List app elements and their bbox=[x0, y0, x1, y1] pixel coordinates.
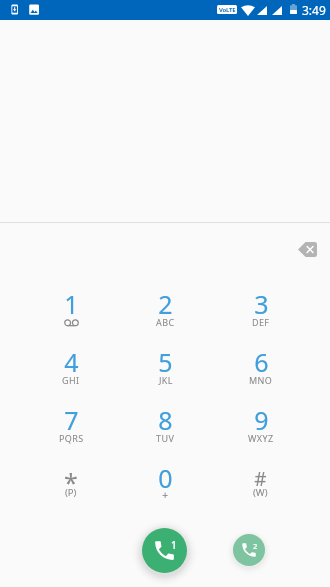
staticText: WXYZ bbox=[248, 432, 274, 444]
button[interactable]: 0 bbox=[118, 461, 213, 519]
staticText: JKL bbox=[159, 374, 173, 386]
staticText: 7 bbox=[64, 403, 79, 437]
staticText: * bbox=[64, 465, 78, 499]
button[interactable]: 8 bbox=[118, 403, 213, 461]
staticText: 8 bbox=[158, 403, 173, 437]
staticText: VoLTE bbox=[219, 6, 236, 14]
button[interactable]: 5 bbox=[118, 345, 213, 403]
button[interactable]: 9 bbox=[213, 403, 308, 461]
staticText: ABC bbox=[156, 316, 175, 328]
button[interactable]: 4 bbox=[24, 345, 118, 403]
staticText: (P) bbox=[65, 486, 77, 499]
staticText: # bbox=[254, 466, 267, 492]
staticText: PQRS bbox=[59, 432, 84, 444]
staticText: MNO bbox=[249, 374, 273, 386]
button[interactable]: 1 bbox=[24, 287, 118, 345]
staticText: 0 bbox=[158, 461, 173, 495]
staticText: 3 bbox=[254, 287, 269, 321]
button[interactable]: 6 bbox=[213, 345, 308, 403]
staticText: DEF bbox=[252, 316, 270, 328]
staticText: + bbox=[162, 487, 169, 502]
staticText: 3:49 bbox=[302, 2, 326, 18]
button[interactable]: Call with SIM 1 bbox=[142, 528, 187, 573]
staticText: (W) bbox=[253, 486, 268, 499]
button[interactable]: Backspace bbox=[292, 234, 322, 264]
button[interactable]: 3 bbox=[213, 287, 308, 345]
button[interactable]: * bbox=[24, 461, 118, 519]
staticText: 1 bbox=[171, 538, 177, 552]
staticText: 6 bbox=[254, 345, 269, 379]
button[interactable]: 2 bbox=[118, 287, 213, 345]
staticText: 4 bbox=[64, 345, 79, 379]
staticText: 5 bbox=[158, 345, 173, 379]
button[interactable]: # bbox=[213, 461, 308, 519]
staticText: 2 bbox=[253, 541, 258, 551]
staticText: 9 bbox=[254, 403, 269, 437]
staticText: 1 bbox=[64, 287, 79, 321]
button[interactable]: Call with SIM 2 bbox=[233, 534, 265, 566]
staticText: GHI bbox=[62, 374, 80, 386]
staticText: TUV bbox=[156, 432, 175, 444]
button[interactable]: 7 bbox=[24, 403, 118, 461]
staticText: 2 bbox=[158, 287, 173, 321]
